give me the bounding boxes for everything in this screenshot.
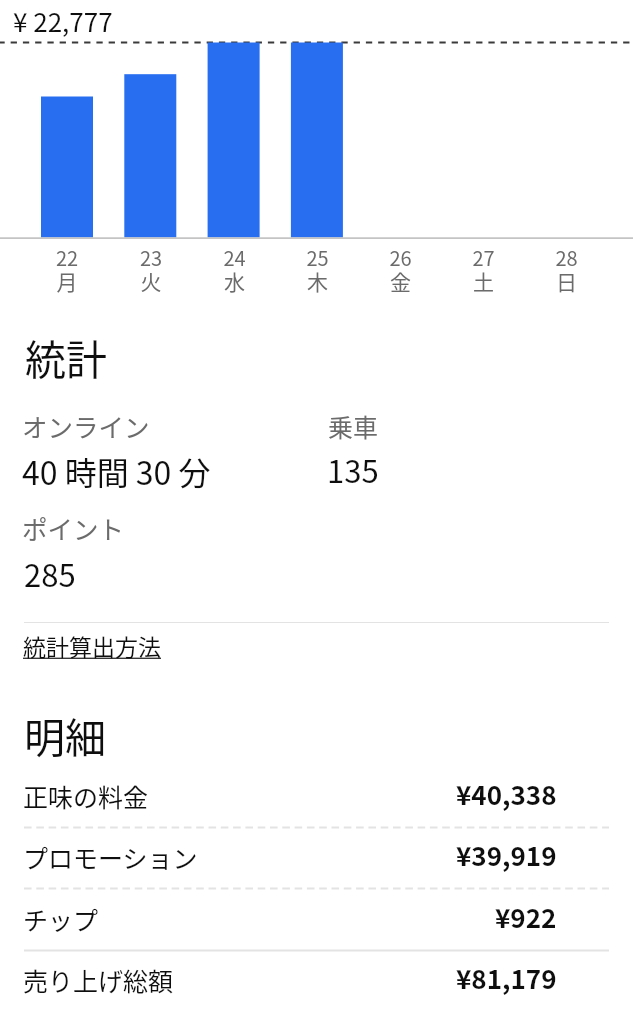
staticText: 23 [109,243,193,272]
staticText: チップ [23,901,99,937]
staticText: 統計 [25,327,107,386]
staticText: 285 [24,551,76,596]
staticText: 土 [442,266,525,296]
button[interactable]: チップ [0,889,633,951]
button[interactable]: 統計算出方法 [14,624,174,662]
staticText: ¥40,338 [456,775,557,813]
staticText: ¥39,919 [456,836,557,874]
staticText: 26 [359,243,442,272]
staticText: ¥81,179 [456,959,557,997]
staticText: オンライン [22,407,150,444]
button[interactable]: 23 火 [109,0,193,303]
button[interactable]: 売り上げ総額 [0,950,633,1012]
staticText: ポイント [22,509,125,546]
staticText: 統計算出方法 [23,629,161,662]
button[interactable]: 24 水 [193,0,276,303]
button[interactable]: 27 土 [442,0,525,303]
staticText: 明細 [24,705,106,764]
button[interactable]: 25 木 [276,0,359,303]
button[interactable]: 26 金 [359,0,442,303]
button[interactable]: 28 日 [525,0,608,303]
staticText: 木 [276,266,359,296]
staticText: プロモーション [23,839,198,875]
staticText: 金 [359,266,442,296]
staticText: 水 [193,266,276,296]
staticText: 25 [276,243,359,272]
button[interactable]: 22 月 [25,0,109,303]
staticText: 売り上げ総額 [23,962,174,998]
staticText: 月 [25,266,109,296]
staticText: 28 [525,243,608,272]
staticText: 乗車 [328,408,379,444]
staticText: 正味の料金 [23,778,149,814]
staticText: 135 [327,447,379,492]
staticText: 22 [25,243,109,272]
staticText: 27 [442,243,525,272]
staticText: 日 [525,266,608,296]
staticText: 24 [193,243,276,272]
staticText: ¥ 22,777 [13,2,113,40]
staticText: 火 [109,266,193,296]
button[interactable]: 正味の料金 [0,766,633,828]
staticText: 40 時間 30 分 [22,448,211,494]
button[interactable]: プロモーション [0,827,633,889]
staticText: ¥922 [495,898,557,936]
